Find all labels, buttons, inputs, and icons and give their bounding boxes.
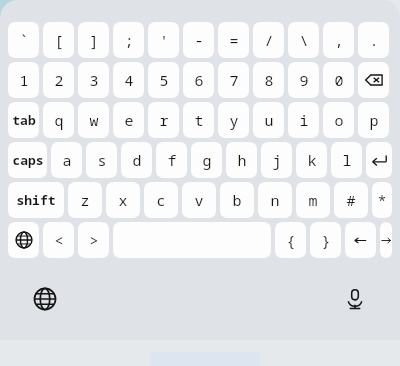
button[interactable]: t <box>183 102 214 138</box>
button[interactable]: , <box>323 22 354 58</box>
button[interactable]: ` <box>8 22 39 58</box>
button[interactable]: m <box>296 182 330 218</box>
button[interactable]: o <box>323 102 354 138</box>
button[interactable]: l <box>331 142 362 178</box>
staticText: \ <box>299 30 309 50</box>
button[interactable]: x <box>106 182 140 218</box>
staticText: { <box>286 230 296 250</box>
staticText: ] <box>89 30 99 50</box>
staticText: o <box>334 110 344 130</box>
button[interactable]: < <box>43 222 74 258</box>
button[interactable]: q <box>43 102 74 138</box>
button[interactable]: 6 <box>183 62 214 98</box>
button[interactable]: e <box>113 102 144 138</box>
button[interactable]: 0 <box>323 62 354 98</box>
staticText: p <box>369 110 379 130</box>
button[interactable]: ; <box>113 22 144 58</box>
button[interactable]: Voice input <box>338 282 372 316</box>
button[interactable]: k <box>296 142 327 178</box>
staticText: - <box>194 30 204 50</box>
button[interactable]: v <box>182 182 216 218</box>
button[interactable]: 1 <box>8 62 39 98</box>
button[interactable]: y <box>218 102 249 138</box>
button[interactable]: 5 <box>148 62 179 98</box>
button[interactable]: b <box>220 182 254 218</box>
staticText: f <box>167 150 177 170</box>
staticText: # <box>346 190 356 210</box>
staticText: x <box>118 190 128 210</box>
button[interactable]: > <box>78 222 109 258</box>
button[interactable]: Enter <box>366 142 392 178</box>
staticText: 1 <box>19 70 29 90</box>
button[interactable]: } <box>310 222 341 258</box>
button[interactable]: Languages <box>28 282 62 316</box>
staticText: y <box>229 110 239 130</box>
button[interactable]: p <box>358 102 389 138</box>
staticText: 6 <box>194 70 204 90</box>
button[interactable]: h <box>226 142 257 178</box>
button[interactable]: j <box>261 142 292 178</box>
staticText: 2 <box>54 70 64 90</box>
staticText: 4 <box>124 70 134 90</box>
staticText: i <box>299 110 309 130</box>
button[interactable]: g <box>191 142 222 178</box>
button[interactable]: Right <box>380 222 392 258</box>
staticText: tab <box>12 111 36 129</box>
staticText: z <box>80 190 90 210</box>
button[interactable]: = <box>218 22 249 58</box>
button[interactable]: Backspace <box>358 62 389 98</box>
staticText: > <box>89 230 99 250</box>
staticText: ' <box>159 30 169 50</box>
button[interactable]: c <box>144 182 178 218</box>
button[interactable]: - <box>183 22 214 58</box>
button[interactable]: a <box>51 142 82 178</box>
staticText: g <box>202 150 212 170</box>
button[interactable]: 4 <box>113 62 144 98</box>
staticText: v <box>194 190 204 210</box>
staticText: } <box>321 230 331 250</box>
staticText: k <box>307 150 317 170</box>
button[interactable]: tab <box>8 102 39 138</box>
button[interactable]: ' <box>148 22 179 58</box>
staticText: * <box>377 190 387 210</box>
button[interactable]: s <box>86 142 117 178</box>
button[interactable]: 3 <box>78 62 109 98</box>
staticText: n <box>270 190 280 210</box>
button[interactable]: 9 <box>288 62 319 98</box>
button[interactable]: n <box>258 182 292 218</box>
staticText: c <box>156 190 166 210</box>
button[interactable]: 2 <box>43 62 74 98</box>
staticText: shift <box>16 191 56 209</box>
staticText: , <box>334 30 344 50</box>
button[interactable]: d <box>121 142 152 178</box>
staticText: 0 <box>334 70 344 90</box>
button[interactable]: [ <box>43 22 74 58</box>
button[interactable]: / <box>253 22 284 58</box>
staticText: w <box>89 110 99 130</box>
button[interactable]: f <box>156 142 187 178</box>
button[interactable]: ] <box>78 22 109 58</box>
button[interactable]: . <box>358 22 389 58</box>
staticText: caps <box>12 151 44 169</box>
button[interactable]: 7 <box>218 62 249 98</box>
staticText: q <box>54 110 64 130</box>
button[interactable]: { <box>275 222 306 258</box>
staticText: 9 <box>299 70 309 90</box>
button[interactable]: w <box>78 102 109 138</box>
button[interactable]: 8 <box>253 62 284 98</box>
staticText: = <box>229 30 239 50</box>
button[interactable]: Left <box>345 222 376 258</box>
button[interactable]: z <box>68 182 102 218</box>
button[interactable]: i <box>288 102 319 138</box>
staticText: m <box>308 190 318 210</box>
button[interactable]: # <box>334 182 368 218</box>
button[interactable]: shift <box>8 182 64 218</box>
button[interactable]: r <box>148 102 179 138</box>
button[interactable]: * <box>372 182 392 218</box>
staticText: < <box>54 230 64 250</box>
button[interactable]: \ <box>288 22 319 58</box>
button[interactable]: Switch language <box>8 222 39 258</box>
button[interactable]: caps <box>8 142 47 178</box>
button[interactable]: u <box>253 102 284 138</box>
